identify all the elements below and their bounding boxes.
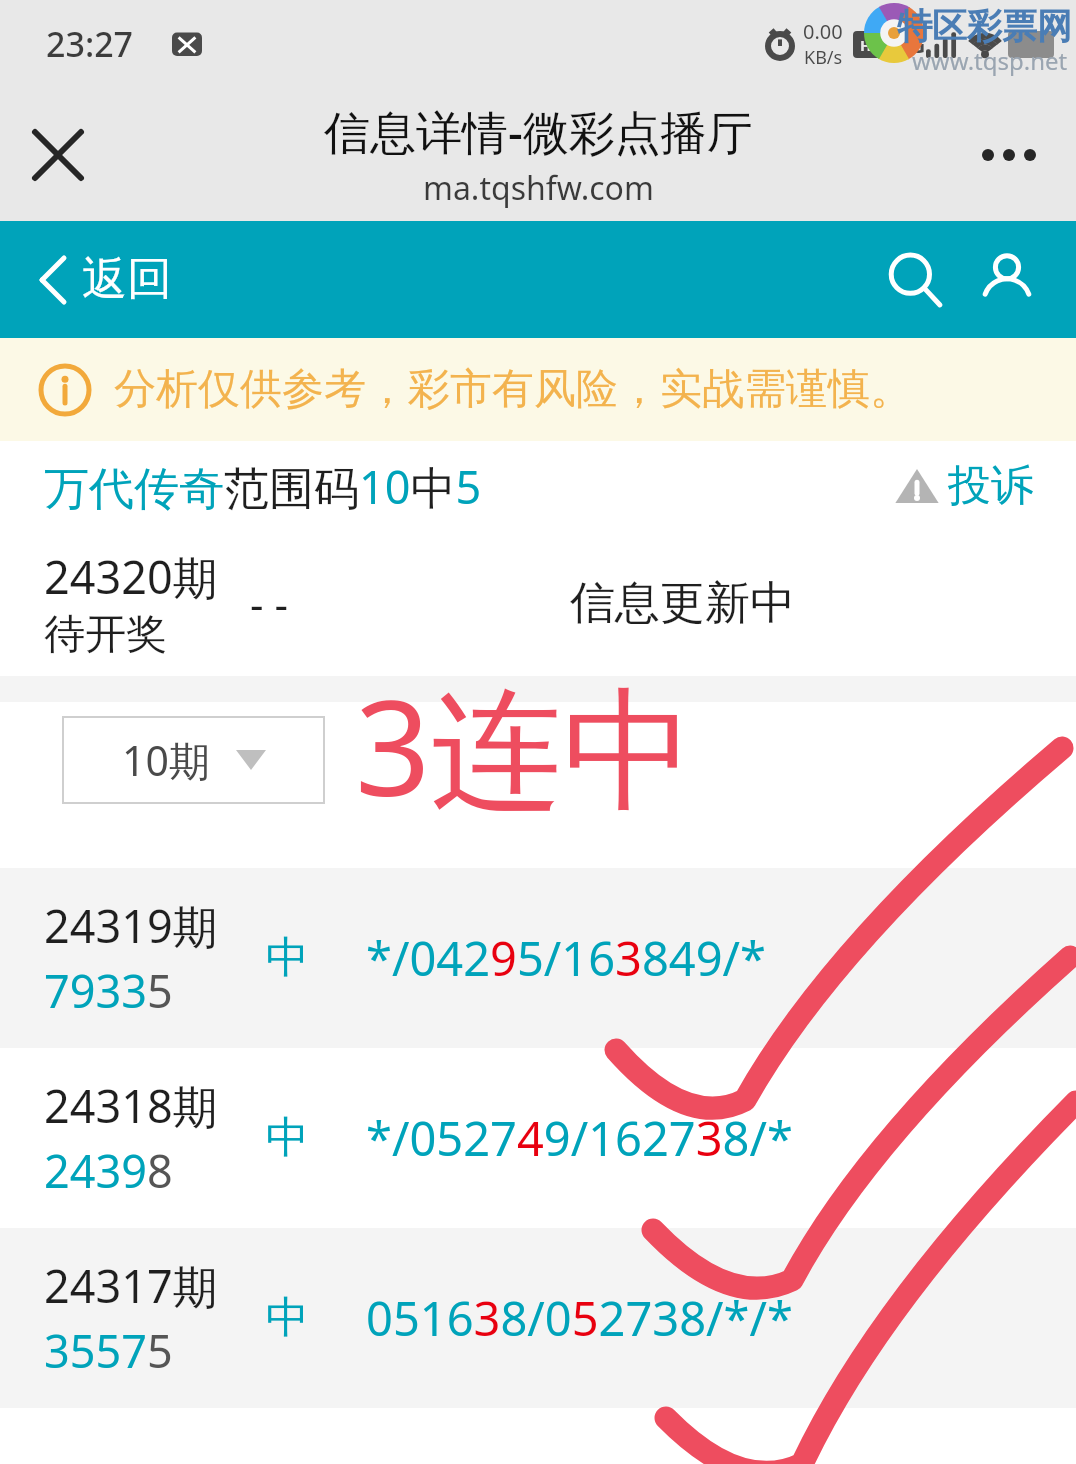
staticText: 23:27 <box>46 21 134 67</box>
button[interactable]: 关闭 <box>20 117 96 193</box>
staticText: 3连中 <box>355 655 695 835</box>
button[interactable]: 24319期 <box>0 868 1076 1048</box>
staticText: 待开奖 <box>44 609 167 661</box>
staticText: 24317期 <box>44 1255 218 1316</box>
button[interactable]: 更多 <box>964 125 1054 185</box>
staticText: - - <box>250 575 288 632</box>
staticText: 10期 <box>122 732 210 788</box>
staticText: */052749/162738/* <box>366 1106 793 1170</box>
staticText: 79335 <box>44 960 173 1021</box>
staticText: 信息详情-微彩点播厅 <box>324 100 753 163</box>
staticText: 24318期 <box>44 1075 218 1136</box>
staticText: 分析仅供参考，彩市有风险，实战需谨慎。 <box>114 363 912 416</box>
staticText: HD <box>860 35 883 55</box>
button[interactable]: 24318期 <box>0 1048 1076 1228</box>
button[interactable]: 我的 <box>964 237 1050 323</box>
staticText: 信息更新中 <box>570 575 795 632</box>
staticText: 中 <box>266 1111 309 1165</box>
staticText: 24320期 <box>44 546 218 607</box>
button[interactable]: 返回 <box>32 241 180 318</box>
staticText: 0.00 <box>803 18 843 45</box>
staticText: 051638/052738/*/* <box>366 1286 793 1350</box>
button[interactable]: 投诉 <box>888 453 1040 519</box>
staticText: 中 <box>266 931 309 985</box>
button[interactable]: 搜索 <box>872 237 958 323</box>
staticText: www.tqsp.net <box>912 44 1068 77</box>
staticText: 24398 <box>44 1140 173 1201</box>
staticText: 投诉 <box>948 459 1034 513</box>
staticText: 24319期 <box>44 895 218 956</box>
staticText: ma.tqshfw.com <box>423 166 654 210</box>
staticText: 返回 <box>82 251 172 308</box>
staticText: */04295/163849/* <box>366 926 766 990</box>
staticText: KB/s <box>804 45 843 70</box>
button[interactable]: 24317期 <box>0 1228 1076 1408</box>
staticText: 5G <box>897 29 926 59</box>
staticText: 中 <box>266 1291 309 1345</box>
staticText: 35575 <box>44 1320 173 1381</box>
button[interactable]: 10期 <box>62 716 325 804</box>
staticText: 特区彩票网 <box>897 4 1072 48</box>
button[interactable]: 万代传奇范围码10中5 <box>44 456 482 517</box>
